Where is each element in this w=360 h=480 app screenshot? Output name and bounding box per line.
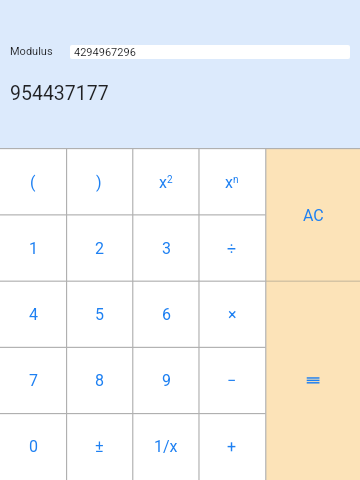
button[interactable]: AC xyxy=(266,149,360,281)
staticText: 0 xyxy=(29,437,38,456)
button[interactable]: xn xyxy=(199,149,265,215)
button[interactable]: 8 xyxy=(66,347,132,413)
button[interactable]: ± xyxy=(66,413,132,479)
staticText: 5 xyxy=(95,305,104,324)
button[interactable]: 3 xyxy=(133,215,199,281)
button[interactable]: ( xyxy=(0,149,66,215)
staticText: ( xyxy=(30,173,36,192)
button[interactable]: + xyxy=(199,413,265,479)
staticText: × xyxy=(228,305,237,324)
button[interactable]: x2 xyxy=(133,149,199,215)
staticText: ± xyxy=(95,437,104,456)
button[interactable]: 5 xyxy=(66,281,132,347)
staticText: 3 xyxy=(162,239,171,258)
button[interactable]: 1/x xyxy=(133,413,199,479)
button[interactable]: 6 xyxy=(133,281,199,347)
staticText: 4294967296 xyxy=(74,46,136,59)
staticText: x2 xyxy=(159,173,173,192)
button[interactable]: ÷ xyxy=(199,215,265,281)
staticText: 2 xyxy=(95,239,104,258)
button[interactable]: 4294967296 xyxy=(70,45,350,59)
staticText: ÷ xyxy=(227,239,237,258)
button[interactable]: 9 xyxy=(133,347,199,413)
staticText: − xyxy=(227,371,237,390)
staticText: Modulus xyxy=(10,45,53,58)
staticText: + xyxy=(227,437,237,456)
staticText: 6 xyxy=(162,305,171,324)
staticText: 1 xyxy=(29,239,38,258)
button[interactable]: 4 xyxy=(0,281,66,347)
staticText: 4 xyxy=(29,305,38,324)
staticText: 9 xyxy=(162,371,171,390)
button[interactable]: − xyxy=(199,347,265,413)
button[interactable]: Menu xyxy=(266,281,360,480)
button[interactable]: × xyxy=(199,281,265,347)
button[interactable]: 0 xyxy=(0,413,66,479)
staticText: 7 xyxy=(29,371,38,390)
button[interactable]: 7 xyxy=(0,347,66,413)
button[interactable]: ) xyxy=(66,149,132,215)
staticText: 8 xyxy=(95,371,104,390)
staticText: 954437177 xyxy=(10,82,109,105)
button[interactable]: 1 xyxy=(0,215,66,281)
button[interactable]: 2 xyxy=(66,215,132,281)
staticText: xn xyxy=(225,173,239,192)
staticText: AC xyxy=(303,206,324,225)
staticText: ) xyxy=(96,173,102,192)
staticText: 1/x xyxy=(154,437,178,456)
